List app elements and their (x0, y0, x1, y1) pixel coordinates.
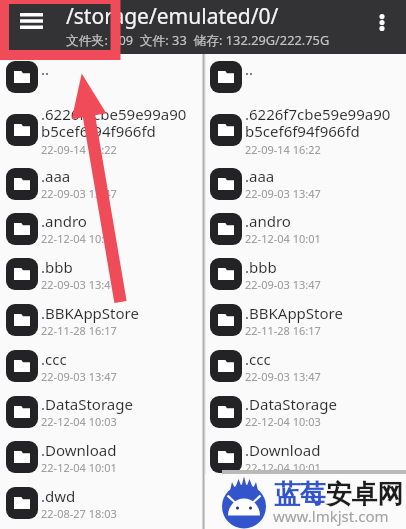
staticText: 22-09-14 16:22 (41, 142, 117, 157)
button[interactable]: .dwd (206, 480, 406, 526)
staticText: .. (41, 59, 50, 79)
staticText: 22-09-03 13:47 (41, 277, 117, 292)
button[interactable]: .aaa (206, 161, 406, 206)
staticText: /storage/emulated/0/ (66, 2, 279, 31)
staticText: 22-09-03 13:47 (245, 369, 321, 384)
button[interactable]: .ccc (0, 343, 202, 389)
button[interactable]: .6226f7cbe59e99a90 b5cef6f94f966fd (0, 99, 202, 161)
staticText: .Download (41, 440, 117, 460)
button[interactable]: .aaa (0, 161, 202, 206)
staticText: www.lmkjst.com (273, 506, 389, 526)
staticText: .BBKAppStore (41, 303, 139, 323)
staticText: .. (245, 59, 254, 79)
button[interactable]: .BBKAppStore (206, 297, 406, 343)
staticText: 22-09-03 13:47 (41, 186, 117, 201)
staticText: .DataStorage (41, 394, 133, 414)
staticText: .BBKAppStore (245, 303, 343, 323)
staticText: .ccc (41, 349, 67, 369)
button[interactable]: .. (206, 54, 406, 99)
button[interactable]: .DataStorage (0, 389, 202, 434)
staticText: 22-09-03 13:47 (245, 277, 321, 292)
staticText: 22-09-03 13:47 (41, 369, 117, 384)
staticText: .6226f7cbe59e99a90 b5cef6f94f966fd (41, 104, 187, 142)
staticText: 22-12-04 10:03 (245, 414, 321, 429)
staticText: 22-09-03 13:47 (245, 186, 321, 201)
staticText: 蓝莓 (274, 478, 326, 511)
staticText: 22-09-14 16:22 (245, 142, 321, 157)
staticText: 22-12-04 10:01 (245, 231, 321, 246)
button[interactable]: .Download (0, 434, 202, 480)
staticText: .bbb (245, 257, 277, 277)
staticText: 22-11-28 16:17 (41, 323, 117, 338)
staticText: .DataStorage (245, 394, 337, 414)
button[interactable]: .ccc (206, 343, 406, 389)
staticText: .aaa (41, 166, 71, 186)
staticText: .andro (41, 211, 87, 231)
staticText: 22-12-04 10:01 (41, 460, 117, 475)
button[interactable]: More options (364, 1, 400, 45)
button[interactable]: .BBKAppStore (0, 297, 202, 343)
button[interactable]: .dwd (0, 480, 202, 526)
staticText: .ccc (245, 349, 271, 369)
staticText: .aaa (245, 166, 275, 186)
staticText: 22-12-04 10:03 (41, 414, 117, 429)
staticText: 22-11-28 16:17 (245, 323, 321, 338)
staticText: .Download (245, 440, 321, 460)
button[interactable]: .bbb (0, 251, 202, 297)
staticText: 22-08-27 18:03 (245, 506, 321, 521)
button[interactable]: .Download (206, 434, 406, 480)
staticText: 安卓网 (326, 478, 404, 511)
staticText: .6226f7cbe59e99a90 b5cef6f94f966fd (245, 104, 391, 142)
button[interactable]: .6226f7cbe59e99a90 b5cef6f94f966fd (206, 99, 406, 161)
staticText: 22-12-04 10:01 (245, 460, 321, 475)
staticText: .dwd (41, 486, 76, 506)
button[interactable]: .DataStorage (206, 389, 406, 434)
button[interactable]: Open navigation menu (3, 0, 59, 42)
staticText: .dwd (245, 486, 280, 506)
staticText: .bbb (41, 257, 73, 277)
button[interactable]: .bbb (206, 251, 406, 297)
staticText: 文件夹: 109 文件: 33 储存: 132.29G/222.75G (66, 31, 330, 48)
staticText: 22-08-27 18:03 (41, 506, 117, 521)
button[interactable]: .andro (0, 206, 202, 251)
staticText: .andro (245, 211, 291, 231)
button[interactable]: .andro (206, 206, 406, 251)
button[interactable]: .. (0, 54, 202, 99)
staticText: 22-12-04 10:01 (41, 231, 117, 246)
